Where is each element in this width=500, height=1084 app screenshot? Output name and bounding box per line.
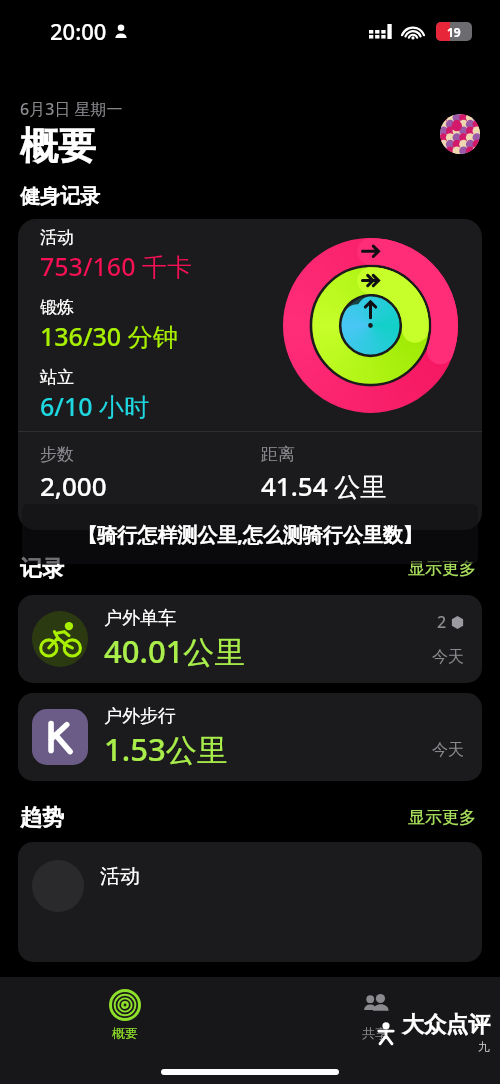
button[interactable]: 户外单车: [18, 595, 482, 683]
button[interactable]: Profile: [440, 114, 480, 154]
button[interactable]: 概要: [0, 989, 250, 1041]
staticText: 概要: [112, 1025, 138, 1041]
staticText: 健身记录: [20, 184, 100, 209]
button[interactable]: 显示更多: [404, 554, 480, 583]
staticText: 锻炼: [40, 297, 74, 318]
button[interactable]: 活动: [18, 842, 482, 962]
staticText: 2: [437, 611, 447, 633]
staticText: 40.01公里: [104, 630, 246, 672]
staticText: 步数: [40, 444, 74, 465]
button[interactable]: 活动: [18, 219, 482, 530]
staticText: 6/10 小时: [40, 389, 150, 423]
staticText: 大众点评: [402, 1011, 490, 1039]
button[interactable]: 共享: [250, 989, 500, 1041]
staticText: 九: [478, 1039, 490, 1054]
staticText: 站立: [40, 367, 74, 388]
staticText: 1.53公里: [104, 728, 228, 770]
button[interactable]: 户外步行: [18, 693, 482, 781]
staticText: 20:00: [50, 16, 107, 46]
staticText: 户外步行: [104, 705, 176, 728]
staticText: 今天: [432, 647, 464, 667]
staticText: 753/160 千卡: [40, 249, 192, 283]
staticText: 概要: [20, 122, 96, 170]
staticText: 2,000: [40, 468, 107, 503]
button[interactable]: 显示更多: [404, 803, 480, 832]
staticText: 显示更多: [408, 807, 476, 828]
staticText: 【骑行怎样测公里,怎么测骑行公里数】: [77, 521, 423, 548]
staticText: 户外单车: [104, 607, 176, 630]
staticText: 活动: [40, 227, 74, 248]
staticText: 共享: [362, 1025, 388, 1041]
staticText: 显示更多: [408, 558, 476, 579]
staticText: 距离: [261, 444, 295, 465]
staticText: 41.54 公里: [261, 468, 387, 504]
staticText: 活动: [100, 864, 140, 889]
staticText: 趋势: [20, 804, 404, 832]
staticText: 今天: [432, 740, 464, 760]
staticText: 136/30 分钟: [40, 319, 178, 353]
staticText: 记录: [20, 555, 404, 583]
staticText: 19: [447, 24, 461, 40]
staticText: 6月3日 星期一: [20, 98, 123, 120]
